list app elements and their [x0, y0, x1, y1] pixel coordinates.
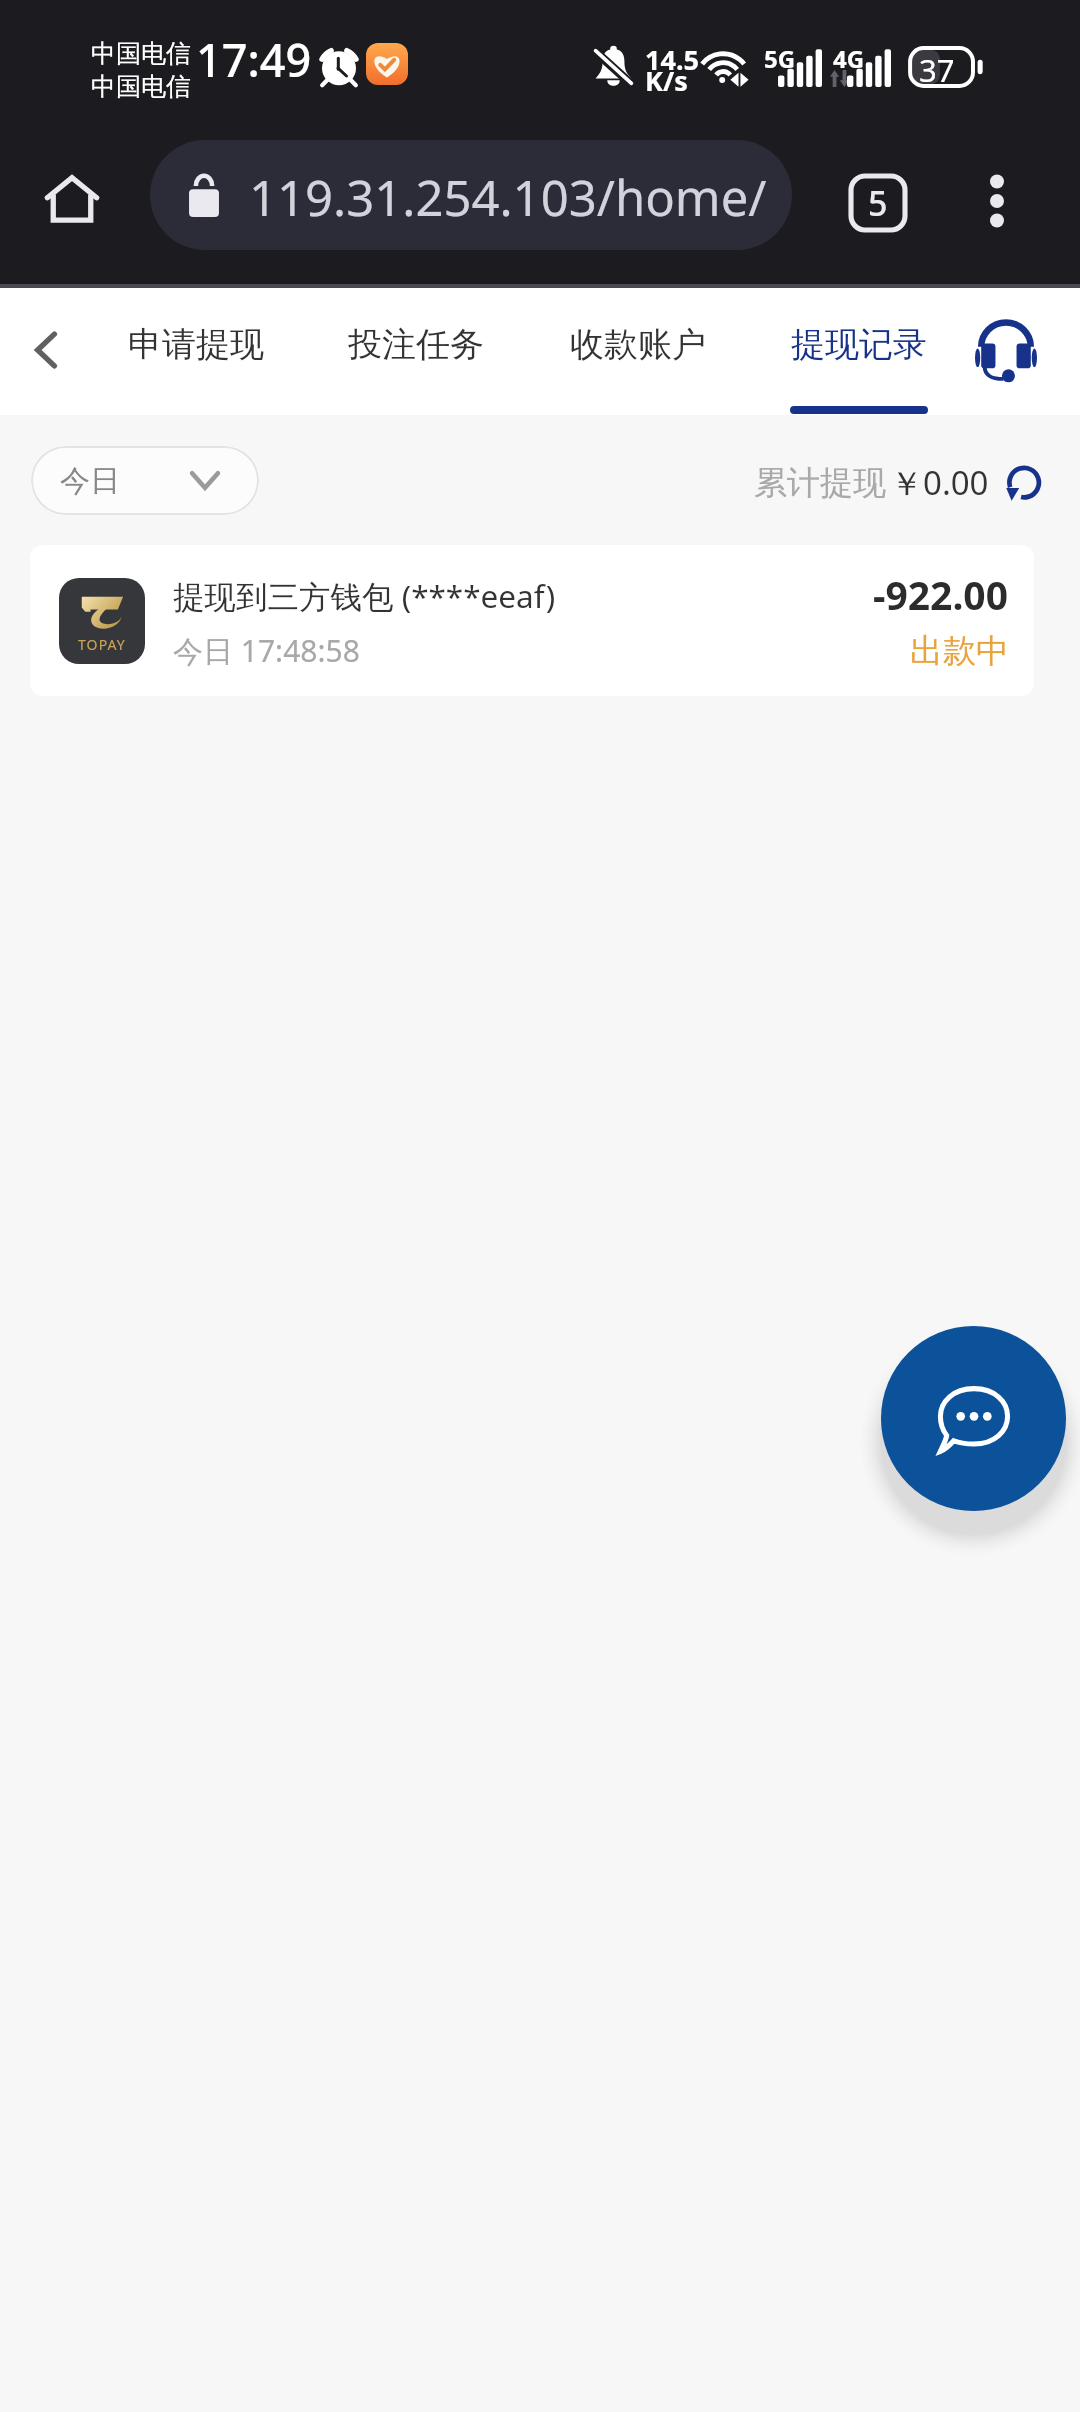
staticText: 提现到三方钱包 (****eeaf)	[173, 574, 556, 617]
staticText: K/s	[645, 62, 688, 99]
button[interactable]: More options	[959, 163, 1035, 239]
staticText: ￥0.00	[890, 460, 989, 505]
button[interactable]: Customer service	[975, 320, 1037, 382]
staticText: 今日	[60, 462, 120, 500]
staticText: 收款账户	[570, 323, 706, 366]
staticText: 提现记录	[791, 323, 927, 366]
button[interactable]: Tabs	[840, 165, 916, 241]
staticText: 出款中	[910, 630, 1009, 672]
button[interactable]: 收款账户	[554, 288, 722, 415]
staticText: TOPAY	[78, 635, 126, 654]
staticText: 累计提现	[754, 462, 886, 504]
staticText: 4G	[833, 42, 865, 75]
staticText: 119.31.254.103/home/	[249, 164, 767, 231]
staticText: 投注任务	[348, 323, 484, 366]
button[interactable]: 提现记录	[775, 288, 943, 415]
staticText: 今日 17:48:58	[173, 630, 360, 671]
button[interactable]: Chat support	[881, 1326, 1066, 1511]
staticText: 中国电信	[91, 71, 191, 102]
button[interactable]: TOPAY	[30, 545, 1034, 696]
staticText: -922.00	[873, 568, 1008, 621]
staticText: 37	[919, 49, 955, 91]
button[interactable]: 今日	[31, 446, 259, 515]
staticText: 申请提现	[128, 323, 264, 366]
staticText: 5	[868, 180, 888, 226]
button[interactable]: 119.31.254.103/home/	[150, 140, 792, 250]
button[interactable]: Home	[30, 158, 114, 242]
button[interactable]: 申请提现	[112, 288, 280, 415]
staticText: 中国电信	[91, 38, 191, 69]
staticText: 14.5	[645, 41, 699, 78]
staticText: 17:49	[196, 29, 312, 90]
button[interactable]: Back	[6, 310, 86, 390]
button[interactable]: Refresh	[1001, 461, 1045, 505]
button[interactable]: 投注任务	[332, 288, 500, 415]
staticText: 5G	[764, 42, 796, 75]
